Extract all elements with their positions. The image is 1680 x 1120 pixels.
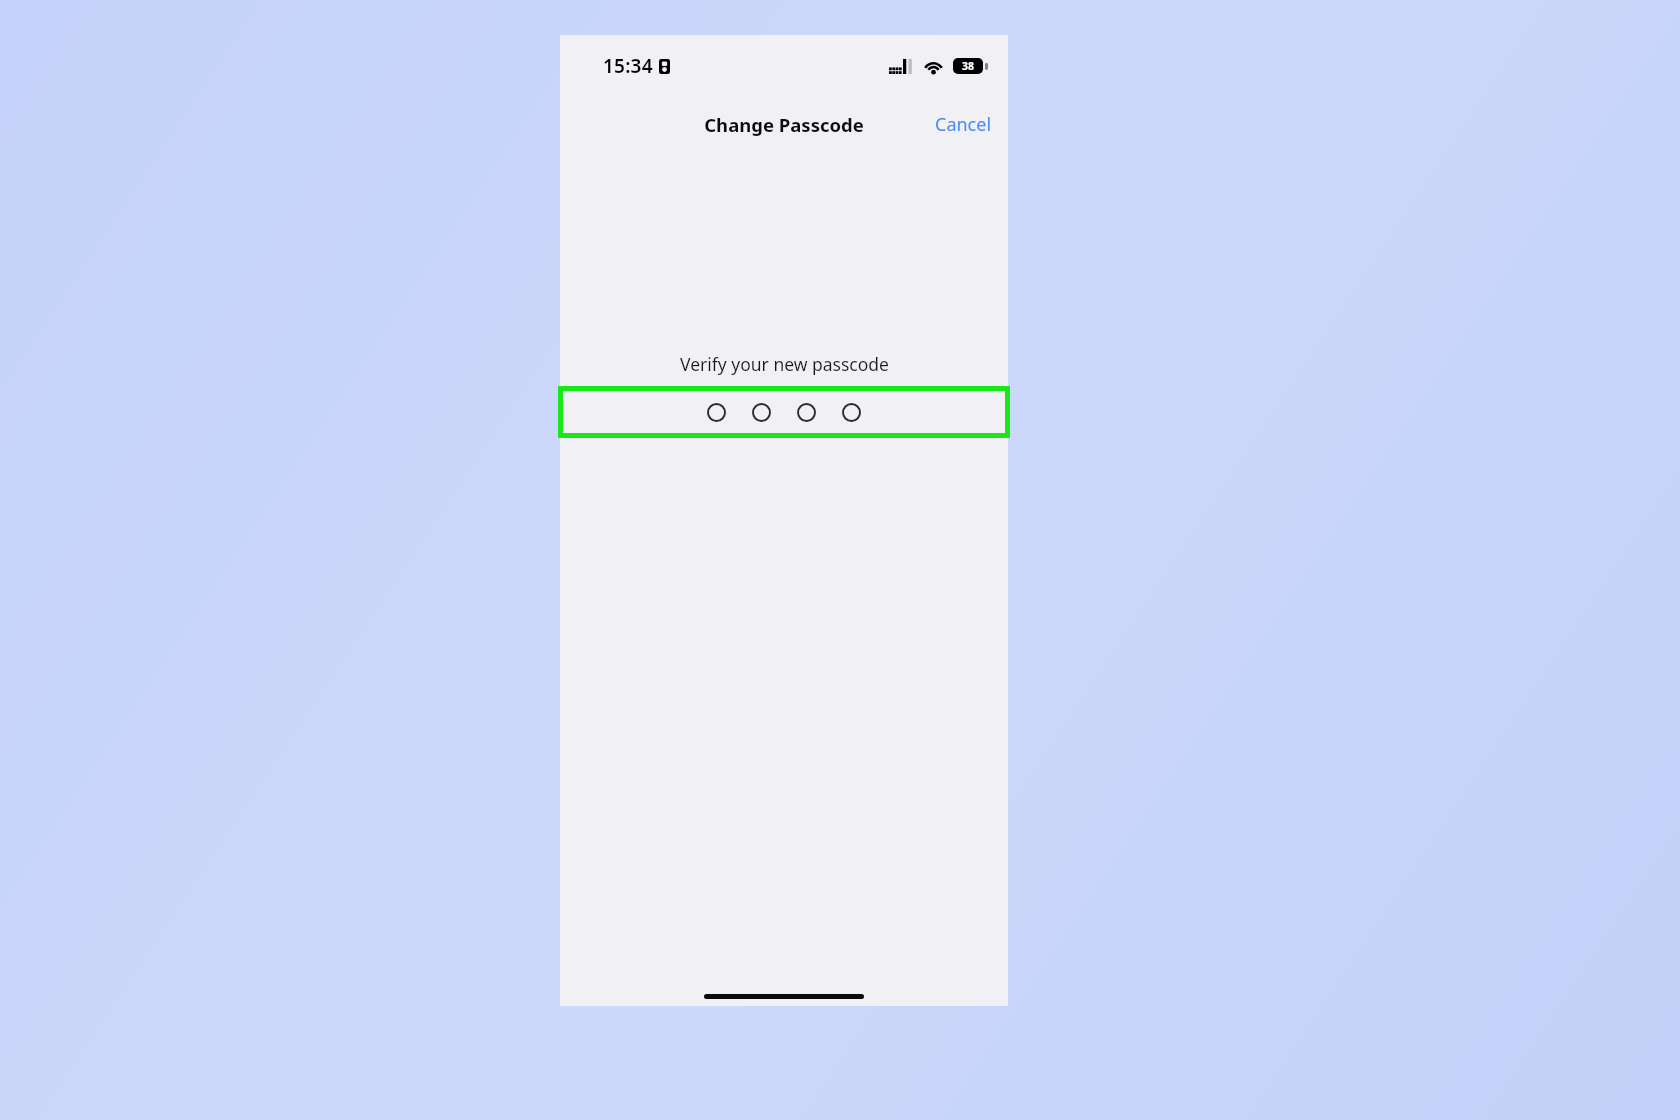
staticText: Change Passcode <box>704 112 864 137</box>
button[interactable]: Cancel <box>919 104 1008 145</box>
button[interactable]: Passcode entry field <box>560 386 1008 438</box>
staticText: 15:34 <box>603 53 653 79</box>
staticText: Verify your new passcode <box>680 352 889 376</box>
staticText: 38 <box>962 59 975 73</box>
staticText: Cancel <box>935 112 992 137</box>
